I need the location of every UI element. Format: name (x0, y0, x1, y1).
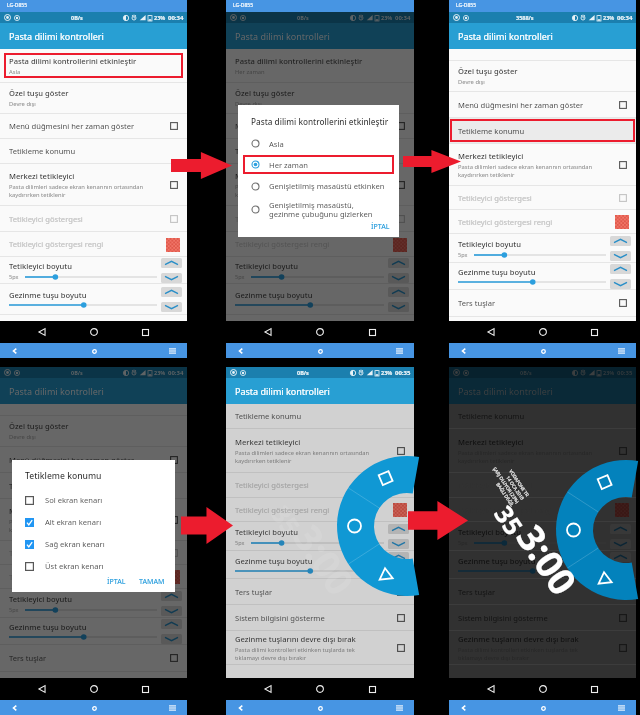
button[interactable]: Back (234, 701, 248, 715)
button[interactable]: Menu (392, 344, 406, 358)
button[interactable]: Asla (238, 133, 399, 154)
button[interactable]: Ters tuşlar (449, 579, 636, 604)
button[interactable]: Tetikleme konumu (0, 473, 187, 498)
button[interactable]: İPTAL (104, 577, 129, 586)
button[interactable]: Home (533, 322, 553, 342)
button[interactable]: TAMAM (136, 577, 168, 586)
button[interactable]: Increase (610, 552, 631, 562)
button[interactable]: Tetikleyici göstergesi (449, 186, 636, 209)
button[interactable]: Menu (165, 701, 179, 715)
button[interactable]: Decrease (161, 302, 182, 312)
button[interactable]: Gezinme tuşu boyutu (226, 284, 414, 314)
button[interactable]: Recents (135, 679, 155, 699)
button[interactable]: Home (87, 701, 101, 715)
button[interactable]: Sağ ekran kenarı (12, 533, 175, 555)
button[interactable]: Increase (388, 258, 409, 268)
button[interactable]: Toggle (615, 157, 631, 173)
button[interactable]: Back (457, 701, 471, 715)
button[interactable]: Increase (388, 552, 409, 562)
button[interactable]: Toggle (393, 640, 409, 656)
button[interactable]: Increase (610, 236, 631, 246)
button[interactable]: Tetikleyici göstergesi (449, 473, 636, 497)
button[interactable]: Merkezi tetikleyici (449, 429, 636, 472)
button[interactable]: Back (8, 344, 22, 358)
button[interactable]: Genişletilmiş masaüstü, gezinme çubuğunu… (238, 197, 399, 222)
button[interactable]: Decrease (388, 302, 409, 312)
button[interactable]: Increase (610, 524, 631, 534)
button[interactable]: Back (457, 344, 471, 358)
button[interactable]: Menu (614, 344, 628, 358)
button[interactable]: Tetikleme konumu (226, 404, 414, 428)
button[interactable]: Decrease (610, 251, 631, 261)
button[interactable]: Back (481, 322, 501, 342)
button[interactable]: Decrease (610, 279, 631, 289)
button[interactable]: Home (310, 679, 330, 699)
button[interactable]: Back (258, 322, 278, 342)
button[interactable]: Tetikleyici göstergesi rengi (226, 498, 414, 521)
button[interactable]: Özel tuşu göster (226, 83, 414, 113)
button[interactable]: Toggle (166, 512, 182, 528)
button[interactable]: Home (310, 322, 330, 342)
button[interactable]: Back (481, 679, 501, 699)
button[interactable]: Toggle (615, 443, 631, 459)
button[interactable]: Pasta dilimi kontrollerini etkinleştir (226, 49, 414, 82)
button[interactable]: Merkezi tetikleyici (449, 144, 636, 185)
button[interactable]: Home (84, 322, 104, 342)
button[interactable]: Toggle (166, 650, 182, 666)
button[interactable]: Pasta dilimi kontrollerini etkinleştir (0, 49, 187, 82)
button[interactable]: Menu (614, 701, 628, 715)
button[interactable]: Tetikleme konumu (449, 404, 636, 428)
button[interactable]: Gezinme tuşlarını devre dışı bırak (449, 631, 636, 664)
button[interactable]: Color (612, 214, 631, 229)
button[interactable]: Toggle (393, 177, 409, 193)
button[interactable]: Decrease (388, 567, 409, 577)
button[interactable]: Ters tuşlar (226, 579, 414, 604)
button[interactable]: Tetikleyici boyutu (0, 257, 187, 283)
button[interactable]: Tetikleyici göstergesi rengi (449, 498, 636, 521)
button[interactable]: Merkezi tetikleyici (226, 164, 414, 205)
button[interactable]: Merkezi tetikleyici (0, 164, 187, 205)
button[interactable]: Her zaman (238, 154, 399, 175)
button[interactable]: Tetikleyici göstergesi (0, 206, 187, 231)
button[interactable]: Back (234, 344, 248, 358)
button[interactable]: Tetikleyici boyutu (449, 234, 636, 262)
button[interactable]: Increase (161, 591, 182, 601)
button[interactable]: Recents (362, 679, 382, 699)
button[interactable]: Genişletilmiş masaüstü etkinken (238, 175, 399, 197)
button[interactable]: Decrease (610, 539, 631, 549)
button[interactable]: Merkezi tetikleyici (226, 429, 414, 472)
button[interactable]: Toggle (393, 584, 409, 600)
button[interactable]: Özel tuşu göster (449, 61, 636, 91)
button[interactable]: Toggle (615, 190, 631, 206)
button[interactable]: Tetikleyici boyutu (226, 522, 414, 550)
button[interactable]: Toggle (166, 118, 182, 134)
button[interactable]: Menü düğmesini her zaman göster (226, 114, 414, 138)
button[interactable]: Gezinme tuşu boyutu (449, 551, 636, 578)
button[interactable]: Sol ekran kenarı (12, 489, 175, 511)
button[interactable]: Decrease (388, 539, 409, 549)
button[interactable]: Tetikleme konumu (226, 139, 414, 163)
button[interactable]: Tetikleme konumu (0, 139, 187, 163)
button[interactable]: Increase (161, 619, 182, 629)
button[interactable]: Ters tuşlar (0, 645, 187, 671)
button[interactable]: Home (533, 679, 553, 699)
button[interactable]: Recents (584, 679, 604, 699)
button[interactable]: Toggle (615, 295, 631, 311)
button[interactable]: Color (612, 502, 631, 517)
button[interactable]: Toggle (166, 452, 182, 468)
button[interactable]: İPTAL (371, 222, 399, 237)
button[interactable]: Increase (388, 287, 409, 297)
button[interactable]: Home (313, 344, 327, 358)
button[interactable]: Menü düğmesini her zaman göster (0, 447, 187, 472)
button[interactable]: Home (313, 701, 327, 715)
button[interactable]: Tetikleyici göstergesi rengi (449, 210, 636, 233)
button[interactable]: Toggle (615, 640, 631, 656)
button[interactable]: Alt ekran kenarı (12, 511, 175, 533)
button[interactable]: Toggle (615, 610, 631, 626)
button[interactable]: Increase (388, 524, 409, 534)
button[interactable]: Menü düğmesini her zaman göster (449, 92, 636, 117)
button[interactable]: Recents (584, 322, 604, 342)
button[interactable]: Home (84, 679, 104, 699)
button[interactable]: Toggle (393, 118, 409, 134)
